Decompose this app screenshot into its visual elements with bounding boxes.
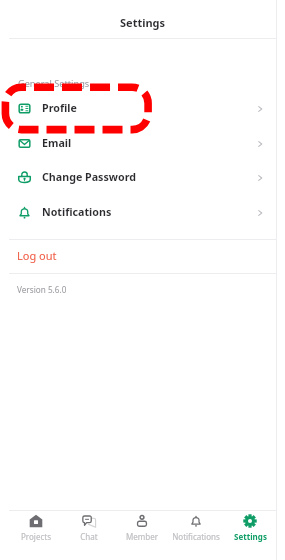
staticText: Notifications <box>172 531 220 542</box>
staticText: Member <box>126 531 158 542</box>
staticText: Version 5.6.0 <box>17 284 67 295</box>
button[interactable]: Member <box>115 510 169 560</box>
button[interactable]: Email <box>0 126 277 161</box>
staticText: Change Password <box>42 170 136 185</box>
button[interactable]: Log out <box>0 239 277 272</box>
staticText: Chat <box>80 531 98 542</box>
staticText: Notifications <box>42 205 112 220</box>
staticText: General Settings <box>18 77 90 90</box>
staticText: Settings <box>234 531 267 542</box>
button[interactable]: Projects <box>9 510 62 560</box>
button[interactable]: Settings <box>223 510 277 560</box>
button[interactable]: Profile <box>0 91 277 126</box>
staticText: Profile <box>42 101 77 116</box>
button[interactable]: Chat <box>62 510 115 560</box>
staticText: Email <box>42 136 72 151</box>
button[interactable]: Notifications <box>0 195 277 230</box>
button[interactable]: Change Password <box>0 160 277 195</box>
button[interactable]: Notifications <box>169 510 223 560</box>
staticText: Log out <box>17 248 57 263</box>
staticText: Settings <box>120 15 166 30</box>
staticText: Projects <box>21 531 51 542</box>
